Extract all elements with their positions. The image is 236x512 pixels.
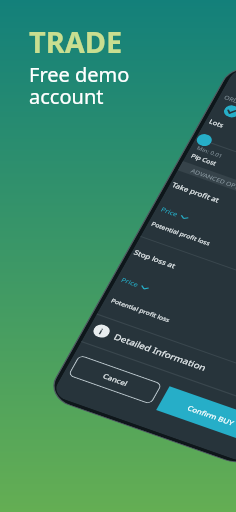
staticText: Potential profit loss xyxy=(110,296,172,323)
button[interactable]: Order type selected xyxy=(221,103,236,119)
staticText: Stop loss at xyxy=(132,248,178,271)
button[interactable]: Price xyxy=(159,206,190,222)
button[interactable]: Lots slider xyxy=(194,132,214,148)
staticText: Take profit at xyxy=(170,180,221,205)
staticText: Min: 0.01 xyxy=(195,145,224,160)
staticText: Confirm BUY xyxy=(186,403,236,428)
button[interactable]: Confirm BUY xyxy=(156,386,236,444)
staticText: Price xyxy=(120,276,140,289)
staticText: TRADE xyxy=(29,22,123,61)
staticText: Potential profit loss xyxy=(150,220,213,247)
staticText: i xyxy=(97,325,106,337)
staticText: Detailed Information xyxy=(112,331,209,373)
staticText: Price xyxy=(159,206,179,219)
staticText: Lots xyxy=(207,117,225,130)
staticText: ORDER TYPE xyxy=(223,93,236,113)
button[interactable]: Price xyxy=(120,276,150,293)
staticText: Pip Cost xyxy=(190,152,218,167)
staticText: Cancel xyxy=(101,371,130,388)
staticText: ADVANCED OPTIONS xyxy=(190,167,236,196)
staticText: Free demo account xyxy=(29,61,130,110)
button[interactable]: Cancel xyxy=(68,354,163,405)
button[interactable]: i xyxy=(91,322,209,374)
